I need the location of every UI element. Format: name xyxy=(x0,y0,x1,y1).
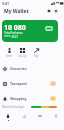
button[interactable]: Send xyxy=(5,48,14,58)
staticText: 10 080 xyxy=(4,23,26,33)
staticText: 9:41 xyxy=(2,1,9,6)
button[interactable]: Profile xyxy=(48,112,64,122)
button[interactable]: Top up xyxy=(18,48,27,58)
staticText: Shopping xyxy=(10,96,27,101)
button[interactable]: My Wallet xyxy=(4,8,29,14)
staticText: Pay xyxy=(34,54,39,58)
staticText: Groceries xyxy=(10,66,27,71)
button[interactable]: Transport xyxy=(2,77,62,90)
staticText: Top up xyxy=(18,54,27,58)
staticText: Monthly budget xyxy=(2,105,25,109)
button[interactable]: Home xyxy=(0,112,16,122)
button[interactable]: Statistics xyxy=(16,112,32,122)
button[interactable]: Shopping xyxy=(2,92,62,105)
button[interactable]: Notifications xyxy=(46,8,52,14)
button[interactable]: Groceries xyxy=(2,62,62,75)
staticText: My Wallet xyxy=(4,8,29,14)
button[interactable]: Pay xyxy=(32,48,41,58)
staticText: Send xyxy=(6,54,13,58)
staticText: Total balance xyxy=(4,31,23,35)
button[interactable]: Card details xyxy=(45,26,53,31)
button[interactable]: Cards xyxy=(32,112,48,122)
button[interactable]: 10 080 xyxy=(2,20,58,42)
staticText: Transport xyxy=(10,81,28,86)
staticText: **** 4521 xyxy=(4,35,19,39)
button[interactable]: Profile xyxy=(53,8,59,14)
